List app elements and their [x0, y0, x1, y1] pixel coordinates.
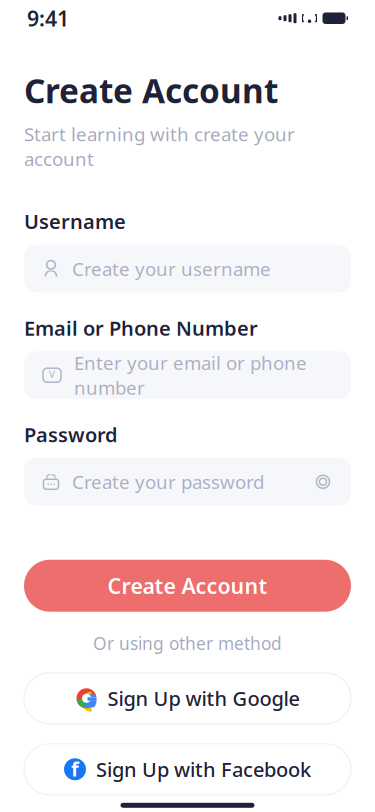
button[interactable]: Create Account	[24, 560, 351, 612]
staticText: v	[49, 365, 55, 381]
button[interactable]: v	[24, 351, 351, 399]
staticText: Create your password	[72, 469, 264, 494]
staticText: Username	[24, 208, 126, 235]
staticText: Create Account	[107, 572, 267, 600]
staticText: Enter your email or phone number	[74, 350, 307, 400]
staticText: Password	[24, 421, 118, 448]
staticText: Or using other method	[93, 632, 282, 655]
staticText: Sign Up with Facebook	[96, 756, 311, 783]
staticText: Start learning with create your account	[24, 121, 295, 171]
staticText: Email or Phone Number	[24, 315, 258, 341]
staticText: f	[71, 755, 79, 782]
button[interactable]: Create your password	[24, 458, 351, 506]
staticText: Create your username	[72, 256, 271, 281]
staticText: Sign Up with Google	[107, 685, 299, 712]
button[interactable]: Create your username	[24, 245, 351, 293]
staticText: Create Account	[24, 68, 278, 112]
button[interactable]: f	[24, 744, 351, 795]
staticText: 9:41	[27, 4, 69, 32]
button[interactable]: Sign Up with Google	[24, 673, 351, 724]
